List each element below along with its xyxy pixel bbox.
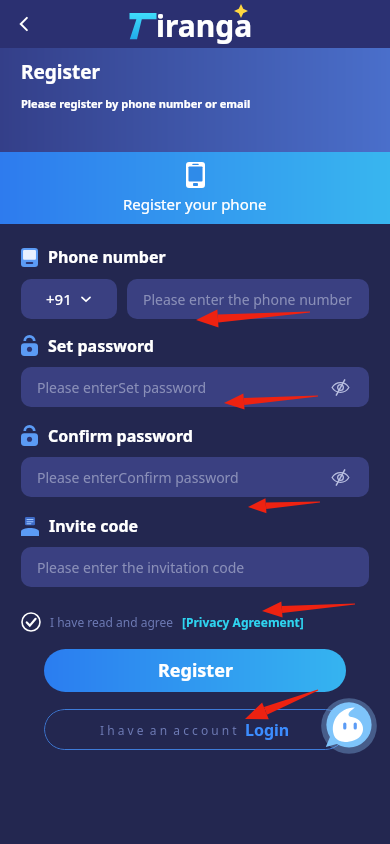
button[interactable]: [Privacy Agreement] — [182, 614, 304, 630]
staticText: Please enter the phone number — [143, 290, 352, 309]
button[interactable]: I h a v e a n a c c o u n t — [44, 709, 346, 750]
button[interactable]: Back — [6, 6, 42, 42]
button[interactable]: Please enterConfirm password — [21, 457, 369, 497]
staticText: Please enterSet password — [37, 378, 207, 397]
staticText: Set password — [48, 335, 154, 357]
button[interactable]: +91 — [21, 279, 117, 319]
staticText: Register — [21, 59, 101, 85]
staticText: Login — [245, 719, 290, 741]
staticText: I h a v e a n a c c o u n t — [100, 722, 237, 738]
button[interactable]: I have read and agree — [21, 612, 304, 632]
staticText: Register — [158, 658, 233, 683]
button[interactable]: Register your phone — [0, 152, 390, 224]
button[interactable]: Show password — [327, 464, 353, 490]
button[interactable]: Please enter the invitation code — [21, 547, 369, 587]
staticText: I have read and agree — [50, 614, 174, 630]
staticText: Please register by phone number or email — [21, 96, 251, 111]
button[interactable]: Please enter the phone number — [127, 279, 369, 319]
button[interactable]: Register — [44, 649, 346, 692]
staticText: Invite code — [49, 515, 139, 537]
staticText: +91 — [46, 289, 72, 309]
staticText: Please enterConfirm password — [37, 468, 239, 487]
button[interactable]: Customer service chat — [320, 697, 378, 755]
staticText: Confirm password — [48, 425, 193, 447]
button[interactable]: Please enterSet password — [21, 367, 369, 407]
staticText: Please enter the invitation code — [37, 558, 245, 577]
button[interactable]: Show password — [327, 374, 353, 400]
staticText: Register your phone — [123, 194, 267, 214]
staticText: iranga — [156, 5, 253, 46]
staticText: Phone number — [48, 246, 166, 268]
